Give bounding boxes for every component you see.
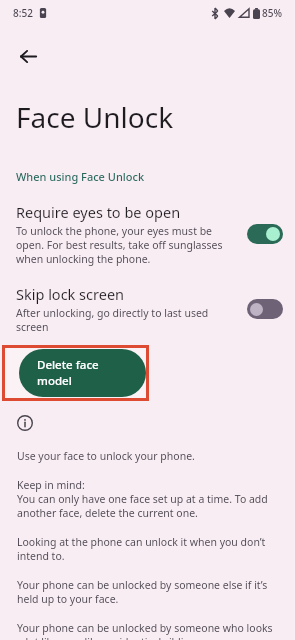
- button[interactable]: Back: [8, 36, 48, 76]
- staticText: Skip lock screen: [16, 284, 125, 304]
- staticText: 85%: [262, 6, 282, 20]
- staticText: Your phone can be unlocked by someone wh…: [17, 621, 278, 640]
- button[interactable]: Delete face model: [19, 349, 146, 397]
- staticText: Keep in mind: You can only have one face…: [17, 478, 278, 520]
- staticText: Delete face model: [37, 357, 128, 389]
- staticText: 8:52: [13, 6, 33, 20]
- staticText: Your phone can be unlocked by someone el…: [17, 578, 278, 606]
- staticText: To unlock the phone, your eyes must be o…: [16, 224, 239, 266]
- staticText: Looking at the phone can unlock it when …: [17, 535, 278, 563]
- button[interactable]: Skip lock screen: [0, 284, 295, 334]
- staticText: When using Face Unlock: [16, 169, 145, 184]
- button[interactable]: Off: [247, 299, 283, 319]
- staticText: Require eyes to be open: [16, 202, 181, 222]
- button[interactable]: On: [247, 224, 283, 244]
- staticText: Use your face to unlock your phone.: [17, 449, 195, 463]
- staticText: After unlocking, go directly to last use…: [16, 306, 239, 334]
- button[interactable]: Require eyes to be open: [0, 200, 295, 268]
- staticText: Face Unlock: [16, 98, 174, 136]
